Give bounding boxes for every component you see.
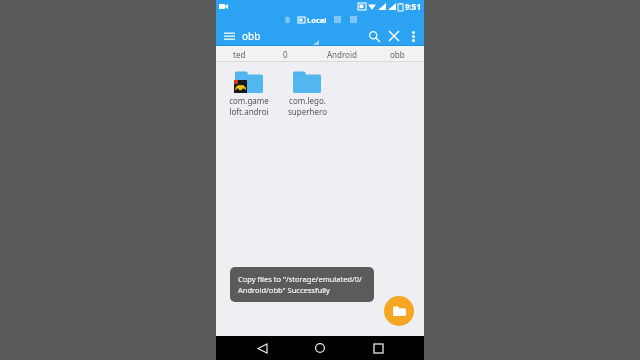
button[interactable]: New folder: [384, 296, 414, 326]
staticText: Android: [327, 49, 357, 60]
staticText: com.lego.: [289, 95, 326, 106]
button[interactable]: obb: [373, 46, 422, 62]
button[interactable]: Search: [364, 26, 384, 46]
button[interactable]: 0: [261, 46, 310, 62]
staticText: ted: [233, 49, 246, 60]
button[interactable]: com.lego.: [278, 66, 336, 119]
button[interactable]: Home: [308, 336, 332, 360]
button[interactable]: Back: [250, 336, 274, 360]
button[interactable]: Menu: [220, 27, 238, 45]
staticText: Local: [307, 15, 327, 25]
button[interactable]: Home: [281, 14, 293, 25]
button[interactable]: Local: [298, 15, 327, 25]
staticText: 9:51: [405, 1, 421, 12]
staticText: obb: [390, 49, 405, 60]
staticText: obb: [242, 29, 261, 43]
button[interactable]: Close: [384, 26, 404, 46]
staticText: Android/obb" Successfully: [238, 285, 330, 295]
staticText: superhero: [288, 106, 327, 117]
staticText: 0: [283, 49, 288, 60]
staticText: loft.androi: [229, 106, 269, 117]
staticText: Copy files to "/storage/emulated/0/: [238, 274, 362, 284]
button[interactable]: ted: [218, 46, 261, 62]
staticText: com.game: [229, 95, 269, 106]
button[interactable]: Network: [332, 14, 343, 25]
button[interactable]: com.game: [220, 66, 278, 119]
button[interactable]: Android: [310, 46, 373, 62]
button[interactable]: Cloud: [348, 14, 359, 25]
button[interactable]: More options: [404, 27, 422, 45]
button[interactable]: Recents: [366, 336, 390, 360]
